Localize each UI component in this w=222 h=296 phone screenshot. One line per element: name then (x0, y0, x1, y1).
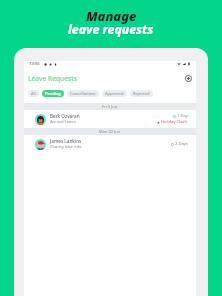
staticText: 2 Days (175, 141, 188, 147)
staticText: Mon 22 Jun (99, 129, 121, 134)
button[interactable]: Pending (42, 90, 64, 97)
staticText: Approved (105, 91, 124, 96)
staticText: Leave Requests (28, 74, 77, 83)
button[interactable]: James Lankins (24, 135, 196, 153)
staticText: 1 Day (177, 113, 188, 119)
staticText: Berk Ozvaran (50, 113, 80, 119)
button[interactable]: Cancellations (67, 90, 99, 97)
staticText: Manage (86, 7, 137, 25)
staticText: Cancellations (70, 91, 96, 96)
staticText: 13:55 (29, 61, 40, 67)
staticText: James Lankins (50, 138, 82, 144)
button[interactable]: Add leave request (183, 73, 193, 83)
staticText: Pending (45, 91, 61, 96)
button[interactable]: All (28, 90, 39, 97)
button[interactable]: Approved (102, 90, 127, 97)
staticText: Holiday Clash (161, 119, 188, 125)
staticText: All (31, 91, 36, 96)
staticText: Annual Leave (50, 119, 76, 125)
staticText: leave requests (68, 21, 154, 38)
button[interactable]: Berk Ozvaran (24, 110, 196, 128)
staticText: Rejected (133, 91, 150, 96)
staticText: Charity bike ride (50, 144, 82, 150)
staticText: Fri 5 Jun (102, 104, 118, 109)
button[interactable]: Rejected (130, 90, 153, 97)
